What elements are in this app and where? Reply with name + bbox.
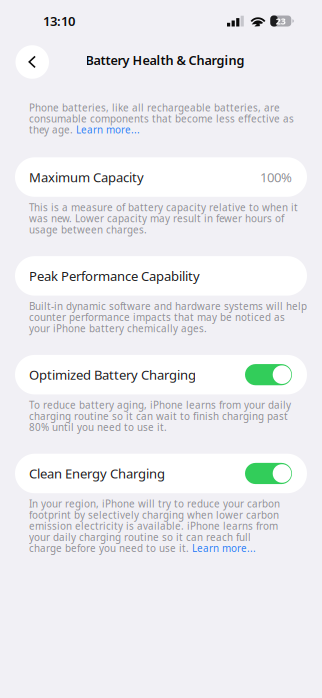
staticText: In your region, iPhone will try to reduc… <box>29 497 280 555</box>
button[interactable]: Maximum Capacity <box>15 157 307 197</box>
staticText: To reduce battery aging, iPhone learns f… <box>29 398 291 434</box>
staticText: Maximum Capacity <box>29 168 144 186</box>
staticText: Phone batteries, like all rechargeable b… <box>29 101 294 136</box>
staticText: Peak Performance Capability <box>29 267 200 285</box>
button[interactable]: Clean Energy Charging <box>15 454 307 493</box>
staticText: 100% <box>260 168 292 186</box>
staticText: Built-in dynamic software and hardware s… <box>29 300 307 335</box>
staticText: Clean Energy Charging <box>29 465 165 482</box>
staticText: Battery Health & Charging <box>85 51 244 69</box>
staticText: 23 <box>276 15 286 27</box>
staticText: Optimized Battery Charging <box>29 366 196 384</box>
staticText: This is a measure of battery capacity re… <box>29 201 298 236</box>
staticText: 13:10 <box>43 12 75 30</box>
button[interactable]: Peak Performance Capability <box>15 256 307 296</box>
button[interactable]: Optimized Battery Charging <box>15 355 307 394</box>
button[interactable]: Back <box>15 45 49 79</box>
